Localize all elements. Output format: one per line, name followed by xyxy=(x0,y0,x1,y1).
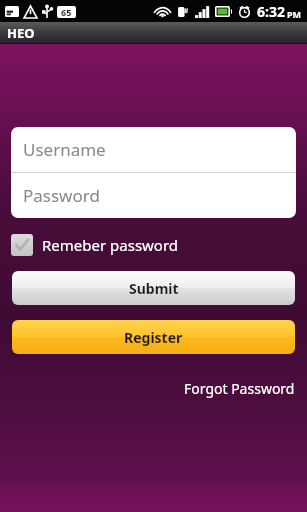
staticText: Register xyxy=(124,328,183,347)
button[interactable]: Username xyxy=(11,127,296,172)
staticText: Submit xyxy=(129,279,179,298)
staticText: Forgot Password xyxy=(184,379,295,398)
staticText: 6:32 xyxy=(257,2,285,21)
button[interactable]: Password xyxy=(11,173,296,218)
button[interactable]: Forgot Password xyxy=(172,376,307,401)
staticText: HEO xyxy=(7,24,35,42)
staticText: Password xyxy=(23,184,100,207)
staticText: 65 xyxy=(61,6,72,18)
button[interactable]: Register xyxy=(12,320,295,354)
button[interactable]: Remeber password xyxy=(11,231,179,259)
staticText: Username xyxy=(23,138,106,161)
staticText: PM xyxy=(287,8,302,20)
button[interactable]: Submit xyxy=(12,271,295,305)
staticText: Remeber password xyxy=(42,235,179,255)
